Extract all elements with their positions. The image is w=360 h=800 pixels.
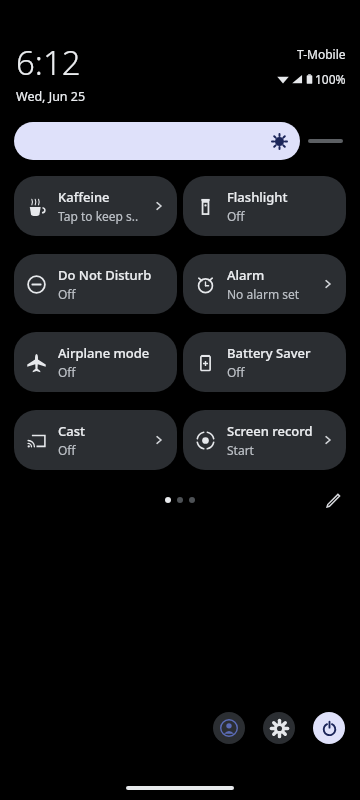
staticText: Cast	[58, 422, 85, 440]
staticText: Battery Saver	[227, 344, 311, 362]
button[interactable]: Settings	[263, 712, 295, 744]
button[interactable]: Flashlight	[183, 176, 346, 236]
staticText: Off	[58, 442, 76, 458]
button[interactable]: Brightness	[14, 122, 300, 160]
button[interactable]: Power	[313, 712, 345, 744]
staticText: Wed, Jun 25	[16, 88, 86, 105]
staticText: Alarm	[227, 266, 265, 284]
staticText: No alarm set	[227, 286, 300, 302]
staticText: 100%	[315, 71, 346, 87]
staticText: Off	[227, 364, 245, 380]
button[interactable]: User	[213, 712, 245, 744]
staticText: Screen record	[227, 422, 313, 440]
staticText: Kaffeine	[58, 188, 110, 206]
staticText: Off	[227, 208, 245, 224]
staticText: Off	[58, 286, 76, 302]
button[interactable]: Airplane mode	[14, 332, 177, 392]
button[interactable]: Cast	[14, 410, 177, 470]
button[interactable]: Alarm	[183, 254, 346, 314]
button[interactable]: Edit tiles	[320, 488, 346, 512]
staticText: Airplane mode	[58, 344, 150, 362]
staticText: T-Mobile	[297, 46, 346, 62]
button[interactable]: Kaffeine	[14, 176, 177, 236]
staticText: Start	[227, 442, 254, 458]
staticText: Flashlight	[227, 188, 288, 206]
staticText: Do Not Disturb	[58, 266, 152, 284]
staticText: 6:12	[16, 40, 81, 85]
staticText: Off	[58, 364, 76, 380]
button[interactable]: Battery Saver	[183, 332, 346, 392]
button[interactable]: Do Not Disturb	[14, 254, 177, 314]
staticText: Tap to keep s..	[58, 208, 139, 224]
button[interactable]: Screen record	[183, 410, 346, 470]
